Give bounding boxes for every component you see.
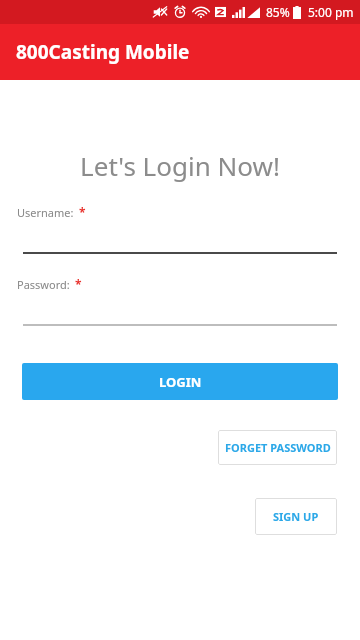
staticText: Username: <box>17 205 74 220</box>
staticText: 800Casting Mobile <box>16 39 190 65</box>
staticText: 5:00 pm <box>308 4 354 20</box>
staticText: 85% <box>266 4 290 20</box>
button[interactable]: FORGET PASSWORD <box>218 430 337 465</box>
staticText: SIGN UP <box>273 509 319 524</box>
button[interactable]: SIGN UP <box>255 498 337 535</box>
staticText: Let's Login Now! <box>0 148 360 183</box>
staticText: FORGET PASSWORD <box>225 440 331 455</box>
staticText: * <box>75 276 82 292</box>
staticText: Password: <box>17 277 70 292</box>
staticText: LOGIN <box>159 373 202 391</box>
staticText: * <box>79 204 86 220</box>
button[interactable]: LOGIN <box>22 363 338 400</box>
